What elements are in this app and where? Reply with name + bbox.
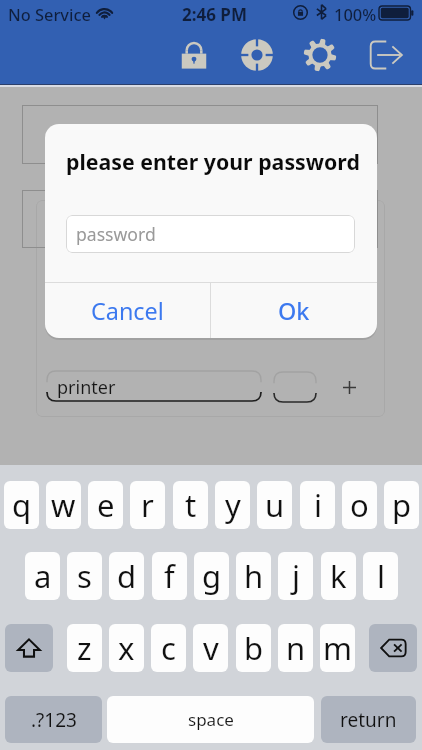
button[interactable]: k	[321, 552, 356, 600]
button[interactable]: n	[278, 624, 313, 672]
staticText: u	[265, 484, 285, 526]
button[interactable]: r	[130, 481, 165, 529]
button[interactable]: h	[236, 552, 271, 600]
staticText: return	[340, 707, 397, 733]
staticText: 100%	[334, 3, 377, 25]
button[interactable]: Cancel	[45, 283, 210, 338]
staticText: h	[244, 555, 264, 597]
button[interactable]: password	[66, 215, 355, 253]
staticText: 2:46 PM	[182, 3, 247, 26]
button[interactable]: c	[151, 624, 186, 672]
button[interactable]: a	[25, 552, 60, 600]
staticText: i	[314, 484, 322, 526]
button[interactable]: w	[46, 481, 81, 529]
staticText: w	[51, 484, 76, 526]
staticText: space	[188, 708, 234, 731]
button[interactable]: u	[257, 481, 292, 529]
staticText: o	[350, 484, 369, 526]
staticText: No Service	[8, 3, 91, 25]
button[interactable]	[22, 105, 378, 164]
button[interactable]: Shift	[5, 624, 53, 672]
button[interactable]	[22, 190, 378, 248]
staticText: q	[12, 484, 32, 526]
button[interactable]: Settings	[288, 24, 351, 86]
staticText: t	[185, 484, 197, 526]
button[interactable]: x	[109, 624, 144, 672]
button[interactable]: i	[300, 481, 335, 529]
button[interactable]: m	[320, 624, 355, 672]
button[interactable]: z	[67, 624, 102, 672]
button[interactable]: o	[342, 481, 377, 529]
button[interactable]: Add	[333, 371, 365, 403]
staticText: z	[77, 627, 92, 669]
button[interactable]: t	[173, 481, 208, 529]
staticText: y	[225, 484, 241, 526]
button[interactable]: b	[236, 624, 271, 672]
staticText: j	[292, 555, 300, 597]
button[interactable]: Backspace	[369, 624, 417, 672]
button[interactable]: v	[193, 624, 228, 672]
button[interactable]: space	[107, 696, 314, 743]
staticText: please enter your password	[66, 147, 360, 176]
button[interactable]: Lock	[162, 24, 225, 86]
staticText: d	[117, 555, 137, 597]
button[interactable]: Log out	[352, 24, 415, 86]
button[interactable]: Numbers	[5, 696, 102, 743]
staticText: e	[97, 484, 115, 526]
button[interactable]: y	[215, 481, 250, 529]
button[interactable]: Field	[273, 371, 317, 403]
button[interactable]: e	[88, 481, 123, 529]
button[interactable]: j	[278, 552, 313, 600]
staticText: printer	[57, 375, 116, 400]
staticText: Ok	[278, 295, 310, 327]
staticText: s	[77, 555, 92, 597]
button[interactable]: g	[194, 552, 229, 600]
button[interactable]: Locate	[225, 24, 288, 86]
button[interactable]: q	[4, 481, 39, 529]
button[interactable]: p	[384, 481, 419, 529]
staticText: m	[323, 627, 352, 669]
staticText: c	[161, 627, 176, 669]
staticText: p	[392, 484, 412, 526]
staticText: v	[203, 627, 219, 669]
button[interactable]: l	[363, 552, 398, 600]
staticText: r	[141, 484, 154, 526]
staticText: f	[164, 555, 175, 597]
staticText: n	[286, 627, 306, 669]
button[interactable]: printer	[46, 370, 262, 402]
button[interactable]: f	[152, 552, 187, 600]
button[interactable]: d	[109, 552, 144, 600]
staticText: g	[202, 555, 222, 597]
staticText: x	[118, 627, 135, 669]
button[interactable]: Return	[321, 696, 416, 743]
button[interactable]: s	[67, 552, 102, 600]
staticText: k	[330, 555, 347, 597]
staticText: .?123	[31, 707, 77, 733]
button[interactable]: Ok	[211, 283, 377, 338]
staticText: password	[76, 222, 156, 246]
staticText: l	[377, 555, 385, 597]
staticText: a	[34, 555, 52, 597]
staticText: b	[244, 627, 264, 669]
staticText: Cancel	[91, 295, 164, 327]
